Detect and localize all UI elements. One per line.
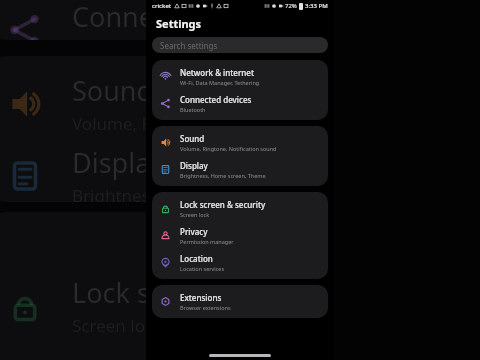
staticText: 72% (285, 2, 297, 10)
staticText: Browser extensions (180, 304, 231, 311)
staticText: Extensions (180, 292, 222, 303)
button[interactable]: Extensions (152, 288, 328, 315)
staticText: Bluetooth (72, 38, 151, 40)
button[interactable]: Sound (152, 129, 328, 156)
staticText: Location (180, 253, 213, 264)
staticText: Displa (72, 144, 151, 181)
staticText: Location services (180, 265, 225, 272)
button[interactable]: Display (152, 156, 328, 183)
staticText: Lock s (72, 274, 150, 311)
staticText: Connected devices (180, 94, 252, 105)
staticText: Settings (156, 16, 202, 31)
staticText: Brightnes (72, 184, 150, 202)
staticText: Display (180, 160, 208, 171)
staticText: Volume, Ringtone, Notification sound (72, 112, 312, 135)
staticText: Wi-Fi, Data Manager, Tethering (180, 79, 260, 86)
staticText: 3:33 PM (305, 2, 328, 10)
button[interactable]: Connected devices (152, 90, 328, 117)
staticText: Privacy (180, 226, 208, 237)
staticText: Connected (72, 0, 209, 35)
staticText: cricket (152, 2, 172, 10)
button[interactable]: Search settings (152, 37, 328, 53)
staticText: Search settings (160, 40, 218, 51)
button[interactable]: Privacy (152, 222, 328, 249)
staticText: Bluetooth (180, 106, 206, 113)
staticText: Network & internet (180, 67, 255, 78)
button[interactable]: Lock screen & security (152, 195, 328, 222)
button[interactable]: Network & internet (152, 63, 328, 90)
staticText: Sound (72, 72, 154, 109)
staticText: Brightness, Home screen, Theme (180, 172, 266, 179)
staticText: Permission manager (180, 238, 234, 245)
staticText: Sound (180, 133, 205, 144)
button[interactable]: Location (152, 249, 328, 276)
staticText: Volume, Ringtone, Notification sound (180, 145, 277, 152)
staticText: Lock screen & security (180, 199, 266, 210)
staticText: Screen lo (72, 314, 145, 337)
staticText: Screen lock (180, 211, 210, 218)
